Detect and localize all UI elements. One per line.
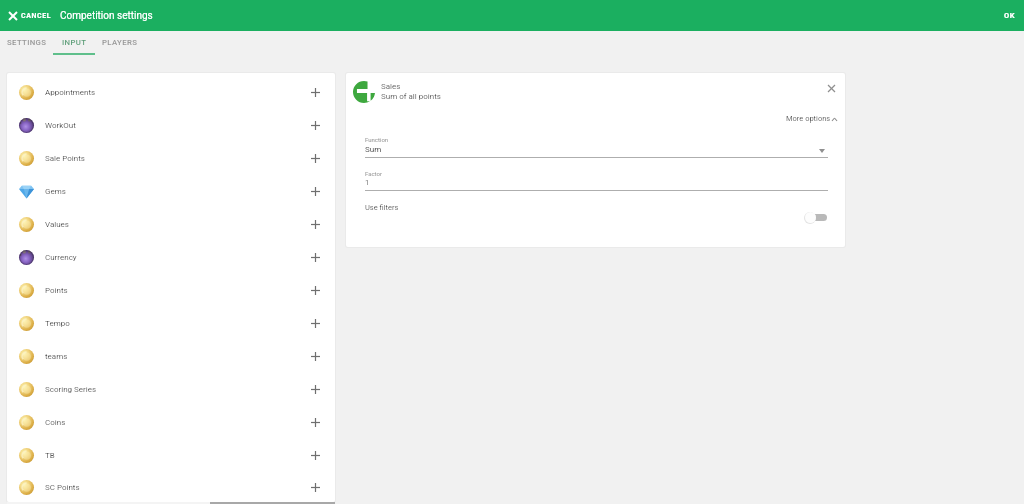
staticText: Use filters bbox=[365, 203, 399, 212]
staticText: OK bbox=[1004, 11, 1016, 20]
staticText: Factor bbox=[365, 170, 382, 177]
button[interactable]: Currency bbox=[7, 241, 335, 274]
staticText: SETTINGS bbox=[7, 38, 47, 47]
staticText: More options bbox=[786, 114, 831, 123]
button[interactable]: Close bbox=[821, 78, 841, 98]
button[interactable]: Coins bbox=[7, 406, 335, 439]
staticText: Sum of all points bbox=[381, 92, 441, 101]
staticText: SC Points bbox=[45, 483, 80, 492]
staticText: Function bbox=[365, 136, 389, 143]
button[interactable]: PLAYERS bbox=[93, 31, 146, 73]
button[interactable]: Appointments bbox=[7, 76, 335, 109]
button[interactable]: CANCEL bbox=[0, 6, 58, 26]
staticText: Points bbox=[45, 286, 68, 295]
staticText: Sum bbox=[365, 145, 382, 154]
staticText: Values bbox=[45, 220, 69, 229]
button[interactable]: OK bbox=[996, 5, 1024, 26]
staticText: Sale Points bbox=[45, 154, 85, 163]
staticText: Tempo bbox=[45, 319, 70, 328]
staticText: Competition settings bbox=[60, 10, 153, 22]
staticText: Coins bbox=[45, 418, 66, 427]
button[interactable]: SC Points bbox=[7, 472, 335, 502]
button[interactable]: INPUT bbox=[53, 31, 95, 73]
button[interactable]: TB bbox=[7, 439, 335, 472]
button[interactable]: Points bbox=[7, 274, 335, 307]
staticText: Gems bbox=[45, 187, 66, 196]
button[interactable]: SETTINGS bbox=[0, 31, 55, 73]
staticText: 1 bbox=[365, 178, 370, 187]
staticText: PLAYERS bbox=[102, 38, 138, 47]
staticText: Sales bbox=[381, 82, 401, 91]
button[interactable]: Scoring Series bbox=[7, 373, 335, 406]
staticText: TB bbox=[45, 451, 55, 460]
staticText: WorkOut bbox=[45, 121, 76, 130]
staticText: CANCEL bbox=[21, 12, 52, 20]
staticText: INPUT bbox=[62, 38, 87, 47]
button[interactable]: teams bbox=[7, 340, 335, 373]
button[interactable]: Gems bbox=[7, 175, 335, 208]
staticText: Currency bbox=[45, 253, 77, 262]
button[interactable]: WorkOut bbox=[7, 109, 335, 142]
button[interactable]: Sale Points bbox=[7, 142, 335, 175]
staticText: teams bbox=[45, 352, 68, 361]
staticText: Scoring Series bbox=[45, 385, 97, 394]
staticText: Appointments bbox=[45, 88, 96, 97]
button[interactable]: More options bbox=[778, 110, 841, 124]
button[interactable]: Tempo bbox=[7, 307, 335, 340]
button[interactable]: Use filters toggle bbox=[798, 205, 838, 229]
button[interactable]: Values bbox=[7, 208, 335, 241]
